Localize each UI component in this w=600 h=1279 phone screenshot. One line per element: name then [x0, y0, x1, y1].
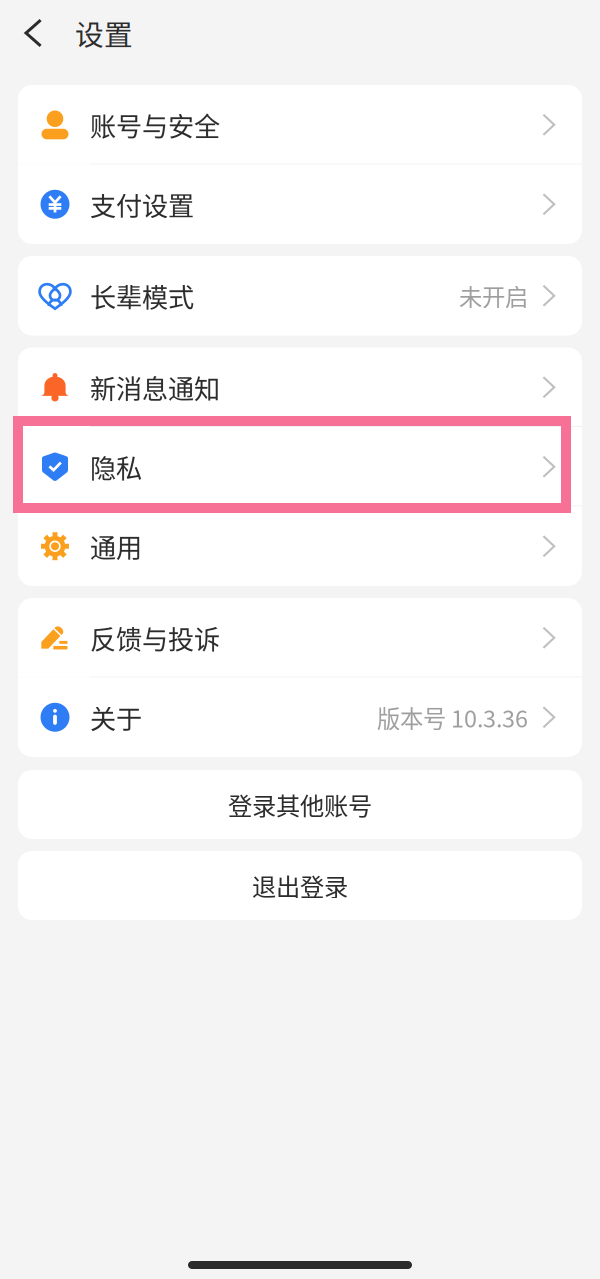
- button[interactable]: Back: [11, 8, 55, 58]
- staticText: 长辈模式: [90, 277, 194, 315]
- button[interactable]: 支付设置: [18, 164, 582, 244]
- staticText: 关于: [90, 698, 142, 736]
- staticText: 版本号 10.3.36: [377, 700, 528, 734]
- staticText: 未开启: [459, 279, 528, 313]
- staticText: 支付设置: [90, 185, 194, 223]
- button[interactable]: 关于: [18, 677, 582, 757]
- staticText: 反馈与投诉: [90, 619, 220, 657]
- button[interactable]: 反馈与投诉: [18, 598, 582, 677]
- button[interactable]: 长辈模式: [18, 256, 582, 335]
- button[interactable]: 账号与安全: [18, 85, 582, 164]
- button[interactable]: 通用: [18, 506, 582, 586]
- staticText: 设置: [75, 12, 133, 54]
- button[interactable]: 隐私: [18, 427, 582, 506]
- staticText: 新消息通知: [90, 368, 220, 406]
- staticText: 账号与安全: [90, 106, 220, 144]
- staticText: 隐私: [90, 448, 142, 486]
- staticText: 通用: [90, 527, 142, 565]
- staticText: 退出登录: [252, 868, 348, 903]
- button[interactable]: 新消息通知: [18, 347, 582, 427]
- button[interactable]: 退出登录: [18, 851, 582, 920]
- staticText: 登录其他账号: [228, 787, 372, 822]
- button[interactable]: 登录其他账号: [18, 770, 582, 839]
